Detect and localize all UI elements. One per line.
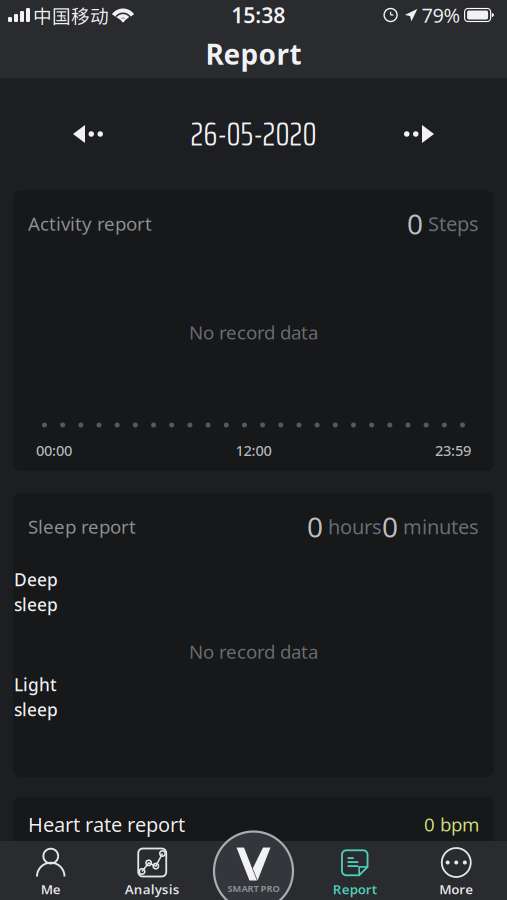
button[interactable]: Next day bbox=[404, 107, 486, 161]
staticText: Sleep report bbox=[28, 514, 136, 539]
button[interactable]: Previous day bbox=[21, 107, 103, 161]
button[interactable]: Smart Pro bbox=[208, 831, 298, 900]
staticText: 12:00 bbox=[235, 440, 271, 460]
staticText: Steps bbox=[423, 210, 479, 237]
staticText: Me bbox=[41, 880, 61, 898]
staticText: 15:38 bbox=[231, 1, 285, 29]
staticText: Light bbox=[14, 673, 57, 696]
staticText: Report bbox=[333, 880, 377, 898]
staticText: 0 bbox=[407, 205, 423, 242]
button[interactable]: More bbox=[405, 841, 507, 900]
staticText: sleep bbox=[14, 698, 58, 721]
staticText: Report bbox=[205, 35, 301, 73]
staticText: No record data bbox=[189, 639, 318, 664]
staticText: SMART PRO bbox=[227, 882, 279, 895]
button[interactable]: Analysis bbox=[101, 841, 203, 900]
staticText: 26-05-2020 bbox=[190, 108, 316, 160]
staticText: Heart rate report bbox=[28, 811, 185, 838]
staticText: hours bbox=[323, 513, 382, 540]
staticText: 中国移动 bbox=[33, 1, 109, 28]
staticText: More bbox=[439, 880, 473, 898]
staticText: 0 bpm bbox=[424, 812, 479, 837]
staticText: Activity report bbox=[28, 211, 152, 236]
button[interactable]: Report bbox=[304, 841, 405, 900]
staticText: 0 bbox=[382, 508, 398, 545]
staticText: No record data bbox=[189, 320, 318, 345]
staticText: 79% bbox=[422, 2, 461, 28]
staticText: Deep bbox=[14, 568, 58, 591]
staticText: 0 bbox=[307, 508, 323, 545]
staticText: minutes bbox=[398, 513, 479, 540]
staticText: 00:00 bbox=[36, 440, 72, 460]
staticText: Analysis bbox=[125, 880, 180, 898]
staticText: 23:59 bbox=[435, 440, 471, 460]
staticText: sleep bbox=[14, 593, 58, 616]
button[interactable]: Me bbox=[0, 841, 101, 900]
